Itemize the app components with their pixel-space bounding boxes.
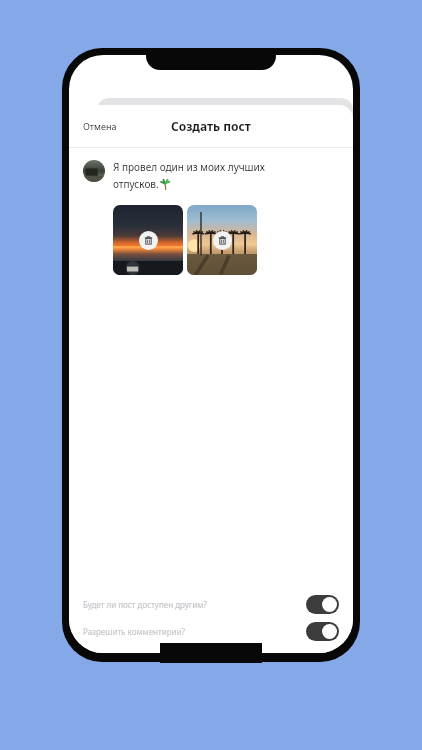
- button[interactable]: Будет ли пост доступен другим?: [83, 595, 339, 614]
- staticText: отпусков.: [113, 177, 159, 191]
- button[interactable]: Разрешить комментирии?: [83, 622, 339, 641]
- button[interactable]: Удалить фото: [213, 231, 232, 250]
- button[interactable]: Удалить фото: [113, 205, 183, 275]
- staticText: Я провел один из моих лучших: [113, 160, 265, 174]
- button[interactable]: Отмена: [75, 114, 125, 138]
- staticText: Отмена: [83, 120, 117, 132]
- button[interactable]: Удалить фото: [139, 231, 158, 250]
- staticText: Будет ли пост доступен другим?: [83, 599, 306, 610]
- button[interactable]: Удалить фото: [187, 205, 257, 275]
- staticText: Создать пост: [171, 118, 251, 134]
- staticText: Разрешить комментирии?: [83, 626, 306, 637]
